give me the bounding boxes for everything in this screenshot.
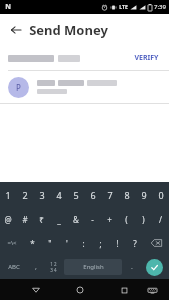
button[interactable]: Back — [7, 21, 25, 39]
staticText: 5 — [73, 189, 79, 201]
button[interactable]: ( — [118, 207, 135, 231]
button[interactable]: . — [124, 255, 140, 279]
button[interactable]: * — [24, 231, 41, 255]
staticText: , — [35, 262, 37, 272]
button[interactable]: 8 — [118, 182, 135, 207]
staticText: =\< — [7, 239, 17, 247]
button[interactable]: 6 — [84, 182, 101, 207]
button[interactable]: Backspace — [143, 231, 169, 255]
staticText: . — [131, 262, 133, 272]
staticText: 1 2 — [50, 261, 57, 267]
button[interactable]: VERIFY — [0, 46, 169, 70]
button[interactable]: 7 — [101, 182, 118, 207]
staticText: 7 — [107, 189, 113, 201]
staticText: 7:39 — [154, 3, 166, 11]
button[interactable]: 1 2 — [44, 255, 62, 279]
button[interactable]: 9 — [135, 182, 152, 207]
staticText: : — [82, 238, 85, 249]
button[interactable]: =\< — [0, 231, 24, 255]
button[interactable]: + — [101, 207, 118, 231]
staticText: 1 — [5, 189, 11, 201]
staticText: 8 — [124, 189, 130, 201]
staticText: ! — [116, 238, 119, 249]
button[interactable]: , — [28, 255, 44, 279]
staticText: ; — [99, 238, 102, 249]
button[interactable]: 2 — [16, 182, 33, 207]
button[interactable]: _ — [50, 207, 67, 231]
button[interactable]: / — [152, 207, 169, 231]
staticText: ABC — [8, 263, 20, 271]
button[interactable]: VERIFY — [132, 51, 161, 65]
button[interactable]: @ — [0, 207, 16, 231]
staticText: " — [48, 238, 52, 249]
button[interactable]: 0 — [152, 182, 169, 207]
staticText: 9 — [141, 189, 147, 201]
button[interactable]: : — [75, 231, 92, 255]
button[interactable]: ! — [109, 231, 126, 255]
staticText: English — [83, 263, 104, 271]
staticText: 2 — [22, 189, 28, 201]
button[interactable]: Home — [70, 280, 90, 300]
button[interactable]: ? — [126, 231, 143, 255]
staticText: P — [16, 82, 21, 93]
staticText: 4 — [56, 189, 62, 201]
button[interactable]: - — [84, 207, 101, 231]
staticText: ' — [66, 238, 68, 249]
button[interactable]: English — [64, 259, 122, 275]
button[interactable]: 4 — [50, 182, 67, 207]
staticText: 0 — [158, 189, 164, 201]
button[interactable]: ; — [92, 231, 109, 255]
button[interactable]: ABC — [0, 255, 28, 279]
staticText: & — [73, 214, 79, 225]
staticText: * — [30, 238, 35, 249]
staticText: ? — [133, 238, 137, 249]
staticText: LTE — [119, 4, 128, 11]
button[interactable]: & — [67, 207, 84, 231]
button[interactable]: # — [16, 207, 33, 231]
staticText: Send Money — [29, 21, 108, 39]
staticText: VERIFY — [134, 53, 159, 63]
staticText: # — [22, 214, 28, 225]
button[interactable]: Recents — [114, 280, 134, 300]
staticText: _ — [57, 214, 61, 225]
button[interactable]: ' — [58, 231, 75, 255]
button[interactable]: " — [41, 231, 58, 255]
button[interactable]: Hide keyboard — [142, 280, 162, 300]
staticText: @ — [4, 214, 12, 225]
button[interactable]: 1 — [0, 182, 16, 207]
button[interactable]: ₹ — [33, 207, 50, 231]
button[interactable]: 5 — [67, 182, 84, 207]
staticText: / — [159, 214, 162, 225]
button[interactable]: P — [0, 71, 169, 103]
button[interactable]: 3 — [33, 182, 50, 207]
staticText: 6 — [90, 189, 96, 201]
staticText: ₹ — [39, 214, 44, 225]
staticText: - — [91, 214, 94, 225]
staticText: 3 — [39, 189, 45, 201]
staticText: N — [5, 2, 11, 12]
staticText: ) — [142, 214, 145, 225]
staticText: + — [107, 214, 112, 225]
button[interactable]: Enter — [146, 259, 163, 276]
button[interactable]: ) — [135, 207, 152, 231]
staticText: 3 4 — [50, 267, 57, 273]
button[interactable]: Back — [26, 280, 46, 300]
staticText: ( — [125, 214, 128, 225]
